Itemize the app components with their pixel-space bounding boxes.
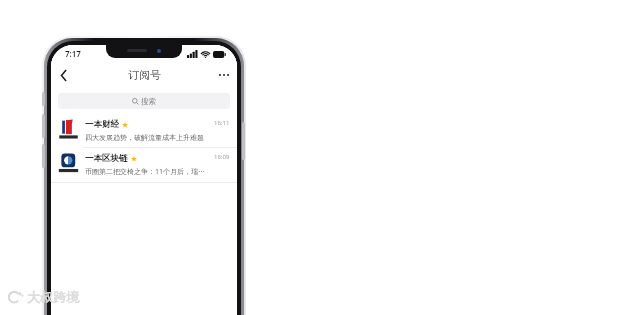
staticText: 币圈第二把交椅之争：11个月后，瑞波币再… bbox=[85, 167, 210, 177]
staticText: 订阅号 bbox=[128, 68, 161, 82]
button[interactable]: 搜索 bbox=[58, 93, 230, 109]
button[interactable]: 一本区块链 bbox=[51, 148, 237, 182]
staticText: 一本财经 bbox=[85, 119, 119, 130]
button[interactable]: Back bbox=[51, 62, 77, 88]
button[interactable]: 一本财经 bbox=[51, 114, 237, 147]
staticText: 16:09 bbox=[214, 153, 230, 161]
staticText: 搜索 bbox=[141, 97, 156, 106]
staticText: 四大发展趋势，破解流量成本上升难题 bbox=[85, 133, 204, 142]
staticText: 16:11 bbox=[214, 119, 230, 127]
staticText: 大叔跨境 bbox=[27, 289, 79, 305]
button[interactable]: More options bbox=[211, 62, 237, 88]
staticText: 7:17 bbox=[65, 48, 81, 59]
staticText: 一本区块链 bbox=[85, 153, 128, 164]
